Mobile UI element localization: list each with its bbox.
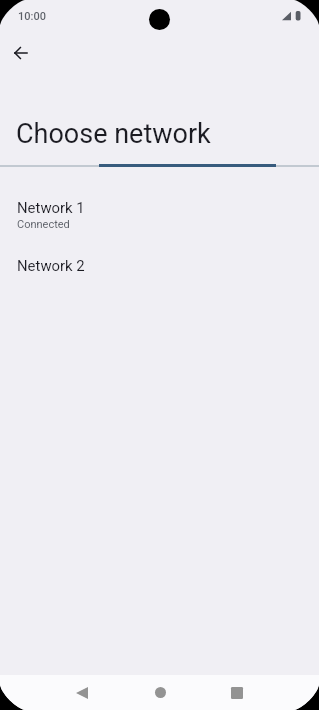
button[interactable]: Back	[60, 675, 104, 710]
staticText: Choose network	[16, 118, 211, 150]
staticText: 10:00	[18, 10, 46, 23]
button[interactable]: Network 2	[0, 250, 319, 294]
staticText: Network 2	[17, 257, 85, 274]
button[interactable]: Recent apps	[215, 675, 259, 710]
button[interactable]: Navigate up	[3, 35, 39, 71]
button[interactable]: Home	[138, 675, 182, 710]
staticText: Network 1	[17, 199, 85, 216]
button[interactable]: Network 1	[0, 192, 319, 250]
staticText: Connected	[17, 218, 70, 231]
